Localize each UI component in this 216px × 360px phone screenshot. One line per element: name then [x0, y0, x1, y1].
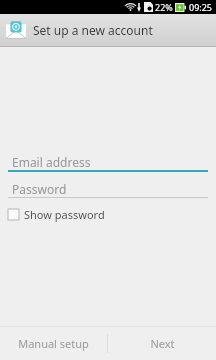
staticText: 22% — [155, 1, 173, 13]
button[interactable]: Password — [8, 181, 208, 197]
staticText: Email address — [12, 154, 91, 170]
staticText: 09:25 — [189, 1, 213, 13]
button[interactable]: Show password — [8, 207, 105, 222]
button[interactable]: Manual setup — [0, 327, 107, 360]
staticText: Manual setup — [18, 336, 89, 351]
staticText: Set up a new account — [33, 22, 153, 38]
button[interactable]: Next — [108, 327, 216, 360]
staticText: Password — [12, 181, 67, 197]
staticText: Next — [150, 336, 175, 351]
staticText: Show password — [24, 207, 105, 222]
button[interactable]: Email address — [8, 154, 208, 170]
